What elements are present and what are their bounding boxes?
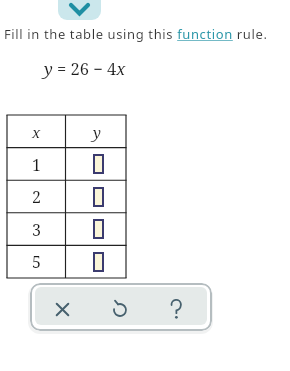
button[interactable]: [93, 154, 104, 174]
button[interactable]: [58, 0, 101, 20]
button[interactable]: [100, 290, 140, 328]
staticText: 5: [32, 251, 41, 273]
button[interactable]: [93, 219, 104, 239]
button[interactable]: [93, 187, 104, 207]
staticText: Fill in the table using this function ru…: [4, 25, 268, 43]
button[interactable]: [156, 290, 196, 328]
button[interactable]: [93, 252, 104, 272]
staticText: x: [32, 122, 41, 142]
staticText: y = 26 − 4x: [44, 57, 126, 79]
staticText: 3: [32, 219, 41, 241]
staticText: 1: [32, 154, 41, 176]
staticText: 2: [32, 186, 41, 208]
staticText: y: [93, 122, 101, 142]
button[interactable]: [42, 290, 82, 328]
